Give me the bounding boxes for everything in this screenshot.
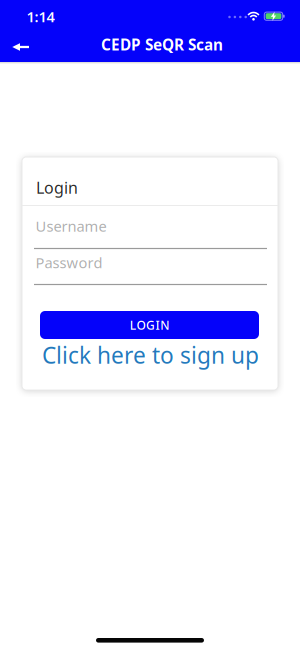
button[interactable]: Username bbox=[34, 213, 267, 249]
staticText: Username bbox=[35, 216, 106, 236]
button[interactable]: Password bbox=[34, 249, 267, 285]
staticText: 1:14 bbox=[26, 7, 54, 26]
button[interactable] bbox=[0, 30, 44, 62]
button[interactable]: LOGIN bbox=[40, 311, 259, 339]
staticText: Login bbox=[36, 177, 78, 198]
staticText: CEDP SeQR Scan bbox=[101, 34, 223, 55]
button[interactable]: Click here to sign up bbox=[42, 340, 259, 370]
staticText: Password bbox=[35, 253, 102, 272]
staticText: Click here to sign up bbox=[42, 340, 259, 370]
staticText: LOGIN bbox=[130, 317, 169, 333]
